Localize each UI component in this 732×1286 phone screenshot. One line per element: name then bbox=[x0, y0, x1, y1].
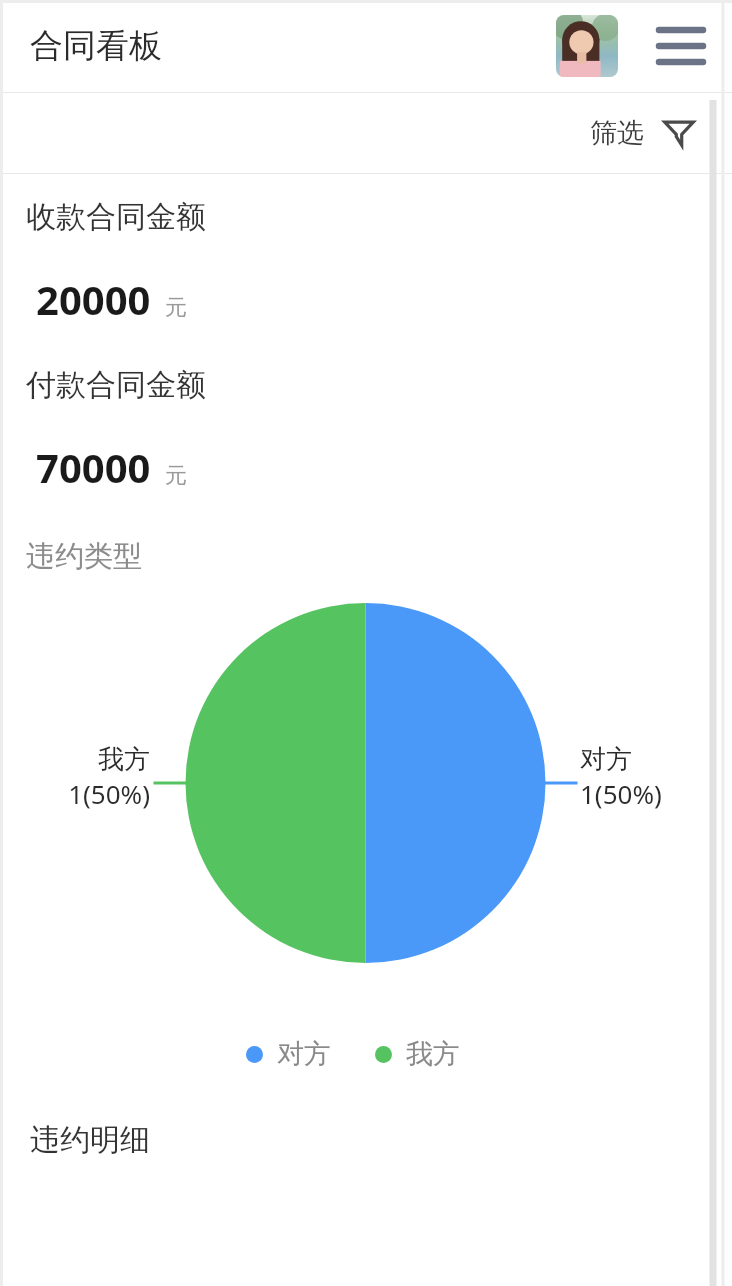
staticText: 对方 bbox=[277, 1037, 331, 1071]
staticText: 元 bbox=[165, 462, 187, 490]
staticText: 付款合同金额 bbox=[26, 366, 206, 404]
button[interactable]: 筛选 bbox=[590, 116, 696, 150]
staticText: 违约明细 bbox=[30, 1121, 150, 1159]
button[interactable]: 我方 bbox=[375, 1037, 460, 1071]
staticText: 对方 bbox=[580, 743, 632, 776]
button[interactable]: Menu bbox=[654, 17, 708, 75]
staticText: 违约类型 bbox=[26, 538, 142, 575]
staticText: 70000 bbox=[36, 440, 151, 494]
staticText: 20000 bbox=[36, 272, 151, 326]
staticText: 我方 bbox=[406, 1037, 460, 1071]
button[interactable]: Profile bbox=[556, 15, 618, 77]
staticText: 元 bbox=[165, 294, 187, 322]
staticText: 1(50%) bbox=[68, 776, 150, 811]
staticText: 合同看板 bbox=[30, 25, 162, 67]
staticText: 1(50%) bbox=[580, 776, 662, 811]
button[interactable]: 对方 bbox=[246, 1037, 331, 1071]
staticText: 收款合同金额 bbox=[26, 198, 206, 236]
staticText: 筛选 bbox=[590, 116, 644, 150]
staticText: 我方 bbox=[98, 743, 150, 776]
